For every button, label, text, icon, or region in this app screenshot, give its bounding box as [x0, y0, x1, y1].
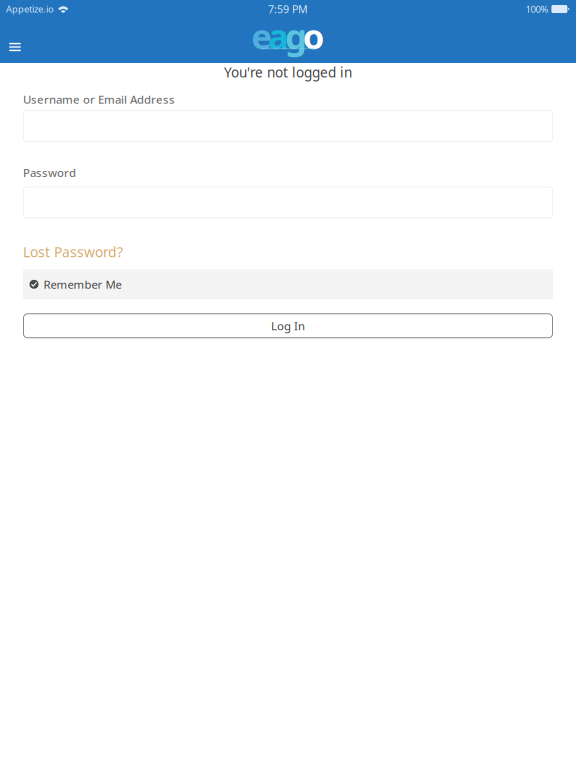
staticText: Username or Email Address: [23, 91, 175, 107]
staticText: o: [303, 13, 325, 59]
button[interactable]: Menu: [0, 19, 30, 62]
staticText: Log In: [271, 318, 305, 334]
staticText: Lost Password?: [23, 242, 123, 261]
staticText: 100%: [525, 2, 548, 16]
button[interactable]: Lost Password?: [23, 242, 123, 261]
staticText: a: [268, 13, 289, 59]
staticText: Password: [23, 165, 76, 180]
staticText: Appetize.io: [6, 3, 54, 15]
staticText: g: [285, 13, 307, 59]
staticText: You're not logged in: [224, 63, 352, 81]
button[interactable]: Log In: [23, 313, 553, 338]
staticText: e: [251, 13, 272, 59]
staticText: 7:59 PM: [268, 2, 308, 16]
staticText: Remember Me: [43, 277, 121, 292]
